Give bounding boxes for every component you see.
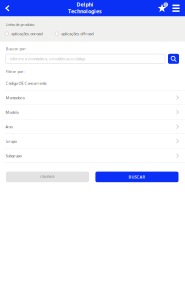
button[interactable]: aplicações offroad <box>55 31 113 36</box>
staticText: Código OE Concorrente <box>5 80 46 86</box>
staticText: Technologies <box>68 7 102 15</box>
staticText: BUSCAR <box>128 174 145 180</box>
staticText: LIMPAR <box>40 174 55 180</box>
button[interactable]: Grupo <box>0 134 185 149</box>
button[interactable]: Subgrupo <box>0 149 185 163</box>
button[interactable]: Código OE Concorrente <box>0 76 185 91</box>
button[interactable]: BUSCAR <box>95 172 178 182</box>
staticText: Delphi <box>76 1 93 8</box>
button[interactable]: Ano <box>0 120 185 134</box>
staticText: Ano <box>5 124 12 129</box>
button[interactable]: Menu <box>169 0 183 16</box>
staticText: Grupo <box>5 138 16 144</box>
button[interactable]: Favorites <box>155 0 169 16</box>
button[interactable]: Modelo <box>0 105 185 120</box>
button[interactable]: Search <box>168 54 179 64</box>
staticText: Linha de produto: <box>5 22 34 27</box>
staticText: Buscar por: <box>5 46 26 51</box>
button[interactable]: Back <box>0 0 15 16</box>
staticText: informe a montadora, o modelo ou o códig… <box>10 56 85 61</box>
button[interactable]: LIMPAR <box>6 172 89 182</box>
staticText: aplicações onroad <box>11 31 42 36</box>
staticText: 0 <box>165 3 167 6</box>
staticText: aplicações offroad <box>61 31 93 36</box>
staticText: Subgrupo <box>5 153 21 158</box>
staticText: Montadora <box>5 95 24 100</box>
staticText: Filtrar por: <box>5 69 24 74</box>
staticText: Modelo <box>5 109 18 115</box>
button[interactable]: Montadora <box>0 91 185 105</box>
button[interactable]: aplicações onroad <box>0 31 55 36</box>
